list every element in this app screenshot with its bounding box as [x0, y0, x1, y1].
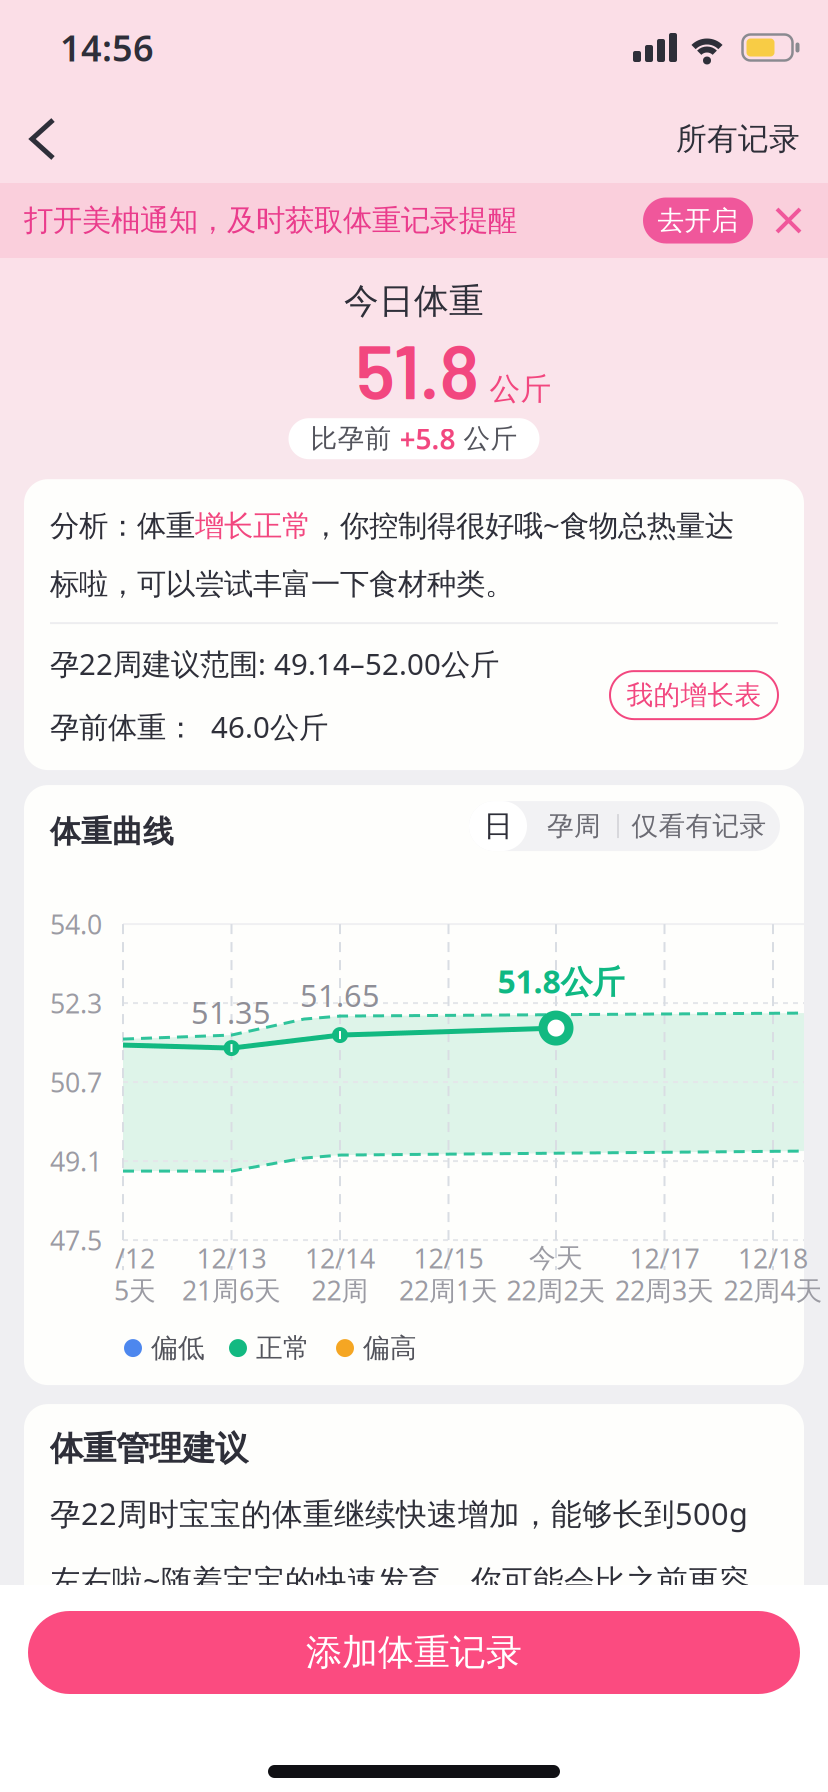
staticText: 54.0 — [50, 906, 102, 942]
button[interactable]: 去开启 — [643, 197, 753, 243]
staticText: 51.35 — [191, 992, 271, 1032]
staticText: 体重曲线 — [50, 813, 174, 851]
staticText: 孕前体重： 46.0公斤 — [50, 707, 328, 746]
staticText: /12 — [115, 1240, 155, 1276]
staticText: 比孕前 — [310, 422, 399, 455]
staticText: +5.8 — [399, 420, 455, 457]
staticText: 12/17 — [629, 1240, 699, 1276]
staticText: 今日体重 — [344, 280, 484, 323]
button[interactable]: 添加体重记录 — [28, 1611, 800, 1694]
staticText: 22周2天 — [506, 1272, 605, 1308]
staticText: 今天 — [529, 1242, 583, 1274]
staticText: 52.3 — [50, 985, 102, 1021]
staticText: 公斤 — [455, 422, 517, 455]
staticText: 22周 — [311, 1272, 368, 1308]
staticText: 51.65 — [300, 975, 380, 1015]
staticText: 14:56 — [60, 24, 154, 71]
staticText: 22周4天 — [723, 1272, 822, 1308]
staticText: 去开启 — [657, 204, 738, 237]
staticText: 正常 — [256, 1332, 310, 1364]
staticText: 孕周 — [547, 810, 601, 842]
staticText: 公斤 — [489, 370, 551, 408]
staticText: 我的增长表 — [626, 679, 761, 711]
staticText: 5天 — [114, 1272, 156, 1308]
staticText: 偏高 — [363, 1332, 417, 1364]
staticText: 49.1 — [50, 1143, 102, 1179]
staticText: 所有记录 — [676, 120, 800, 158]
button[interactable]: 所有记录 — [676, 120, 828, 158]
staticText: 分析：体重增长正常，你控制得很好哦~食物总热量达 标啦，可以尝试丰富一下食材种类… — [50, 505, 734, 602]
staticText: 12/15 — [413, 1240, 483, 1276]
staticText: 日 — [483, 808, 512, 844]
staticText: 偏低 — [151, 1332, 205, 1364]
button[interactable]: 我的增长表 — [610, 671, 778, 719]
staticText: 体重管理建议 — [50, 1428, 248, 1469]
button[interactable]: 孕周 — [469, 801, 559, 851]
staticText: 孕22周时宝宝的体重继续快速增加，能够长到500g 左右啦~随着宝宝的快速发育，… — [50, 1493, 750, 1600]
button[interactable]: Back — [0, 100, 83, 178]
staticText: 打开美柚通知，及时获取体重记录提醒 — [24, 202, 517, 238]
staticText: 51.8公斤 — [497, 960, 624, 1002]
staticText: 12/18 — [738, 1240, 808, 1276]
staticText: 仅看有记录 — [631, 810, 766, 842]
staticText: 12/14 — [305, 1240, 375, 1276]
button[interactable]: 日 — [469, 801, 527, 851]
staticText: 22周1天 — [399, 1272, 498, 1308]
staticText: 22周3天 — [615, 1272, 714, 1308]
button[interactable]: Close — [769, 201, 808, 240]
staticText: 51.8 — [355, 325, 479, 414]
staticText: 12/13 — [196, 1240, 266, 1276]
staticText: 47.5 — [50, 1222, 102, 1258]
staticText: 21周6天 — [182, 1272, 281, 1308]
staticText: 添加体重记录 — [306, 1630, 522, 1675]
staticText: 50.7 — [50, 1064, 102, 1100]
button[interactable]: 仅看有记录 — [469, 801, 609, 851]
staticText: 孕22周建议范围: 49.14–52.00公斤 — [50, 644, 499, 683]
